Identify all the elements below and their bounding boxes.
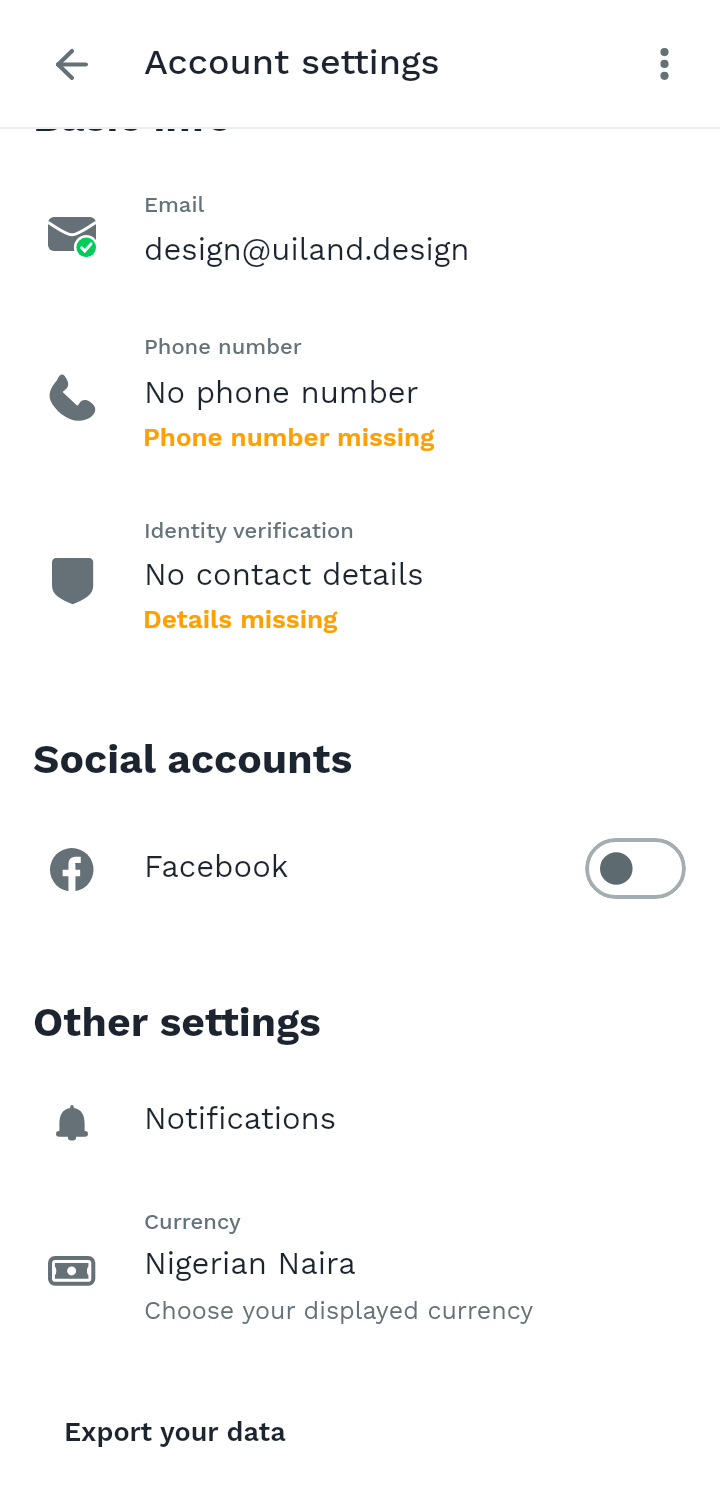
staticText: Social accounts — [33, 735, 353, 783]
staticText: Details missing — [143, 604, 338, 634]
button[interactable]: Facebook toggle — [585, 838, 686, 899]
staticText: Currency — [144, 1209, 241, 1235]
staticText: Email — [144, 192, 205, 218]
staticText: Account settings — [144, 41, 440, 83]
staticText: design@uiland.design — [144, 231, 470, 267]
other: Back — [56, 49, 88, 80]
staticText: Phone number missing — [143, 422, 435, 452]
staticText: Facebook — [144, 848, 289, 884]
staticText: Other settings — [33, 998, 321, 1046]
staticText: Notifications — [144, 1100, 337, 1136]
staticText: Choose your displayed currency — [144, 1296, 534, 1325]
staticText: Basic info — [33, 93, 232, 141]
staticText: Nigerian Naira — [144, 1245, 356, 1281]
staticText: Export your data — [64, 1416, 286, 1448]
button[interactable]: Export your data — [0, 1398, 720, 1478]
button[interactable]: Back — [40, 32, 104, 96]
staticText: Phone number — [144, 334, 302, 360]
staticText: No contact details — [144, 556, 424, 592]
staticText: Identity verification — [144, 518, 354, 544]
staticText: No phone number — [144, 374, 419, 410]
button[interactable]: More options — [632, 32, 696, 96]
